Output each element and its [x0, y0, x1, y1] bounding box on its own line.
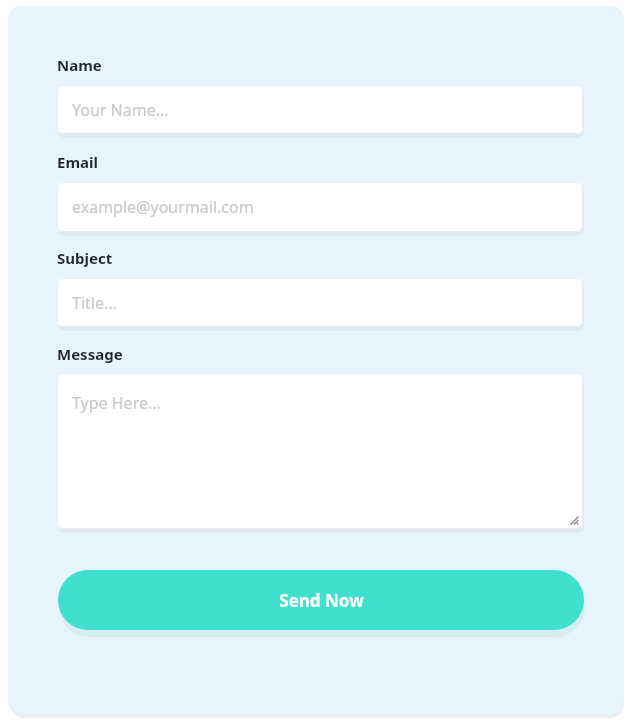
button[interactable]: Email input: [57, 182, 583, 232]
staticText: Name: [57, 55, 102, 75]
button[interactable]: Subject input: [57, 278, 583, 327]
staticText: Subject: [57, 248, 113, 268]
button[interactable]: Message input: [57, 373, 583, 529]
staticText: Your Name...: [72, 99, 169, 121]
staticText: Message: [57, 344, 123, 364]
button[interactable]: Send Now: [58, 570, 584, 630]
staticText: Title...: [72, 292, 117, 314]
staticText: Type Here...: [72, 392, 161, 414]
button[interactable]: Name input: [57, 85, 583, 134]
staticText: example@yourmail.com: [72, 196, 254, 218]
staticText: Send Now: [279, 589, 364, 612]
staticText: Email: [57, 152, 98, 172]
